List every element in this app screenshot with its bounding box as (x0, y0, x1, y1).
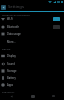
button[interactable]: Battery (0, 74, 64, 81)
button[interactable]: Data usage (0, 30, 64, 37)
staticText: PERSONAL (2, 90, 15, 93)
staticText: Sound (7, 62, 15, 66)
staticText: DEVICE (2, 47, 11, 50)
staticText: WIRELESS & NETWORKS (2, 13, 30, 16)
button[interactable]: Storage (0, 67, 64, 74)
button[interactable]: More... (0, 38, 64, 45)
staticText: Bluetooth (7, 25, 20, 29)
button[interactable]: Wi-Fi (0, 15, 64, 22)
button[interactable]: Back (0, 92, 22, 100)
button[interactable]: Sound (0, 60, 64, 67)
staticText: Storage (7, 69, 17, 73)
button[interactable]: Navigate up (1, 5, 6, 10)
button[interactable]: Home (22, 92, 43, 100)
staticText: More... (7, 40, 16, 44)
staticText: Apps (7, 83, 14, 87)
button[interactable]: Display (0, 52, 64, 59)
staticText: Display (7, 54, 16, 58)
button[interactable]: Recents (43, 92, 64, 100)
staticText: Wi-Fi (7, 17, 13, 21)
staticText: Settings (8, 4, 24, 10)
staticText: Data usage (7, 32, 21, 36)
staticText: Battery (7, 76, 16, 80)
button[interactable]: Toggle on (53, 17, 60, 21)
button[interactable]: Bluetooth (0, 23, 64, 30)
button[interactable]: Apps (0, 81, 64, 88)
